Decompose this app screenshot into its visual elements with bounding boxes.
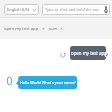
button[interactable]: Assistant avatar <box>6 76 13 86</box>
staticText: ✕ <box>42 27 45 31</box>
button[interactable]: open my test app <box>70 46 108 60</box>
staticText: English (US) <box>7 7 30 12</box>
button[interactable]: Retry <box>58 50 67 59</box>
staticText: ✕ <box>60 27 63 31</box>
button[interactable]: Type or click and hold the mic <box>42 4 110 15</box>
button[interactable]: Hello World What's your name? <box>20 76 77 89</box>
button[interactable]: Microphone <box>103 4 109 15</box>
button[interactable]: English (US) <box>4 4 39 15</box>
staticText: Hello World What's your name? <box>20 80 76 85</box>
button[interactable]: open my test app <box>4 26 45 32</box>
staticText: sum <box>49 26 58 32</box>
staticText: open my test app <box>71 50 107 56</box>
staticText: open my test app <box>4 26 39 32</box>
staticText: Type or click and hold the mic <box>45 7 100 12</box>
button[interactable]: sum <box>49 26 63 32</box>
